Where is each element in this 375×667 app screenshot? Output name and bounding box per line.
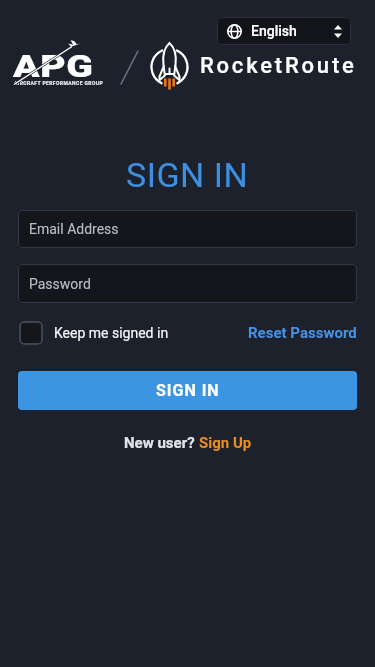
button[interactable]: Password bbox=[18, 264, 357, 303]
button[interactable] bbox=[19, 321, 43, 345]
staticText: Password bbox=[29, 276, 91, 292]
staticText: APG bbox=[13, 48, 94, 84]
staticText: Keep me signed in bbox=[54, 325, 169, 341]
staticText: SIGN IN bbox=[156, 381, 220, 400]
staticText: AIRCRAFT PERFORMANCE GROUP bbox=[14, 80, 104, 86]
button[interactable]: SIGN IN bbox=[18, 371, 357, 410]
button[interactable]: English bbox=[217, 17, 351, 45]
staticText: English bbox=[251, 23, 297, 39]
button[interactable]: Reset Password bbox=[248, 324, 357, 342]
button[interactable]: Sign Up bbox=[199, 434, 252, 452]
staticText: RocketRoute bbox=[200, 53, 357, 79]
button[interactable]: Email Address bbox=[18, 210, 357, 248]
staticText: New user? bbox=[124, 434, 199, 452]
staticText: Email Address bbox=[29, 221, 119, 237]
staticText: SIGN IN bbox=[126, 155, 249, 195]
